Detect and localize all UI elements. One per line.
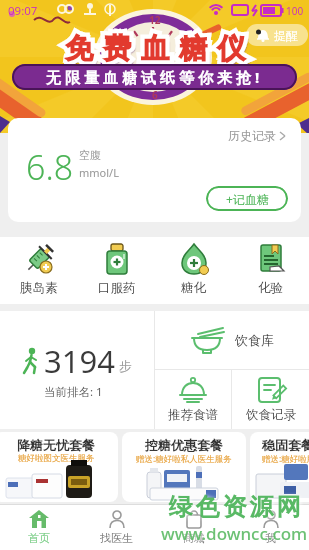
staticText: 首页 — [28, 531, 50, 545]
staticText: 控糖优惠套餐 — [145, 437, 223, 453]
staticText: mmol/L — [79, 165, 119, 180]
staticText: 历史记录 — [228, 128, 276, 143]
button[interactable]: +记血糖 — [206, 186, 288, 211]
button[interactable]: 降糖无忧套餐 — [0, 432, 118, 502]
staticText: 赠送:糖好啦服务 — [262, 453, 309, 465]
button[interactable]: 控糖优惠套餐 — [122, 432, 246, 502]
staticText: www.downcc.com — [161, 522, 308, 545]
staticText: 我 — [265, 531, 276, 545]
staticText: 3194 — [44, 340, 115, 382]
staticText: 糖好啦图文医生服务 — [18, 453, 95, 464]
staticText: 当前排名: 1 — [44, 384, 103, 400]
button[interactable]: 饮食记录 — [232, 370, 309, 429]
staticText: 09:07 — [8, 3, 38, 19]
staticText: 饮食库 — [235, 332, 274, 348]
staticText: 商城 — [183, 531, 205, 545]
button[interactable]: 提醒 — [246, 24, 308, 46]
staticText: +记血糖 — [226, 191, 269, 207]
staticText: 稳固套餐 — [262, 437, 309, 453]
staticText: 胰岛素 — [20, 280, 58, 296]
staticText: 无限量血糖试纸等你来抢! — [46, 67, 264, 87]
staticText: 推荐食谱 — [168, 407, 218, 423]
button[interactable]: 3194 — [0, 311, 154, 429]
button[interactable]: 找医生 — [78, 505, 155, 550]
staticText: 降糖无忧套餐 — [17, 437, 95, 453]
button[interactable]: 推荐食谱 — [155, 370, 231, 429]
staticText: 绿色资源网 — [167, 492, 302, 522]
button[interactable]: 饮食库 — [155, 311, 309, 369]
button[interactable]: 口服药 — [78, 242, 155, 296]
staticText: 提醒 — [274, 28, 298, 43]
staticText: 饮食记录 — [246, 407, 296, 423]
staticText: 化验 — [258, 280, 283, 296]
button[interactable]: 商城 — [155, 505, 232, 550]
button[interactable]: 胰岛素 — [0, 242, 78, 296]
button[interactable]: 我 — [232, 505, 309, 550]
staticText: 6.8 — [26, 144, 74, 190]
button[interactable]: 首页 — [0, 505, 78, 550]
staticText: 100 — [286, 4, 304, 18]
staticText: 免费血糖仪 — [60, 31, 250, 66]
staticText: 免费血糖仪 — [60, 31, 250, 66]
button[interactable]: 历史记录 — [228, 128, 287, 143]
staticText: 糖化 — [181, 280, 206, 296]
button[interactable]: 化验 — [232, 242, 309, 296]
staticText: 12 — [149, 13, 161, 27]
staticText: 步 — [119, 358, 132, 374]
staticText: 空腹 — [79, 148, 101, 162]
button[interactable]: 稳固套餐 — [250, 432, 309, 502]
staticText: 6 — [152, 88, 158, 102]
staticText: 赠送:糖好啦私人医生服务 — [136, 453, 232, 465]
staticText: 找医生 — [100, 531, 133, 545]
staticText: 口服药 — [98, 280, 136, 296]
button[interactable]: 糖化 — [155, 242, 232, 296]
